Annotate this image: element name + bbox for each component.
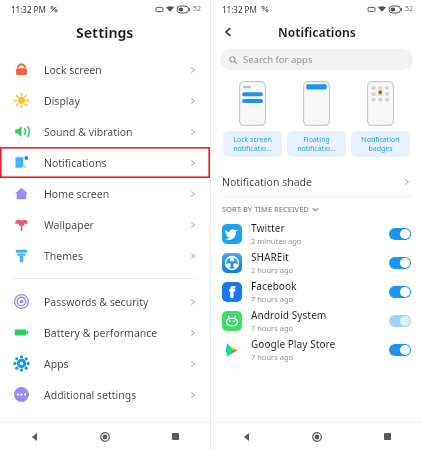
staticText: 7 hours ago [251,352,294,362]
staticText: Battery & performance [44,326,158,340]
staticText: Passwords & security [44,295,149,309]
staticText: Android System [251,308,327,322]
staticText: 2 minutes ago [251,236,302,246]
button[interactable]: SHAREit [211,248,422,277]
staticText: Sound & vibration [44,125,133,139]
staticText: 11:32 PM [222,4,257,15]
staticText: Additional settings [44,388,137,402]
button[interactable]: Notifications [0,147,210,178]
button[interactable]: Display [0,85,210,116]
button[interactable]: Notification badges [351,81,410,157]
staticText: Search for apps [243,53,313,66]
button[interactable]: Additional settings [0,379,210,410]
button[interactable]: Lock screen notificatio... [223,81,282,157]
button[interactable]: Twitter [211,219,422,248]
staticText: 52 [193,4,202,14]
button[interactable]: Toggle Facebook [389,286,411,298]
button[interactable]: Home screen [0,178,210,209]
button[interactable]: Toggle Twitter [389,228,411,240]
button[interactable]: Home [282,423,352,450]
button[interactable]: Search for apps [220,49,413,70]
staticText: Apps [44,357,69,371]
button[interactable]: Back [0,423,70,450]
button[interactable]: Wallpaper [0,209,210,240]
staticText: Themes [44,249,84,263]
staticText: SHAREit [251,250,289,264]
staticText: Lock screen [44,63,102,77]
staticText: 2 hours ago [251,265,294,275]
button[interactable]: Google Play Store [211,335,422,364]
button[interactable]: Recents [140,423,210,450]
staticText: Floating notificatio... [297,135,336,153]
button[interactable]: f [211,277,422,306]
button[interactable]: Back [217,21,239,43]
button[interactable]: Recents [352,423,422,450]
button[interactable]: Home [70,423,140,450]
button[interactable]: Floating notificatio... [287,81,346,157]
staticText: SORT BY TIME RECEIVED [222,204,309,214]
staticText: Home screen [44,187,110,201]
staticText: Settings [76,23,134,42]
staticText: Notification shade [222,175,312,189]
button[interactable]: SORT BY TIME RECEIVED [222,204,422,214]
staticText: f [229,282,236,302]
button[interactable]: Toggle Google Play Store [389,344,411,356]
staticText: Twitter [251,221,285,235]
button[interactable]: Android System [211,306,422,335]
staticText: Google Play Store [251,337,336,351]
staticText: Notifications [278,24,356,40]
button[interactable]: Passwords & security [0,286,210,317]
button[interactable]: Themes [0,240,210,271]
staticText: Facebook [251,279,297,293]
button[interactable]: Toggle SHAREit [389,257,411,269]
staticText: 52 [405,4,414,14]
button[interactable]: Apps [0,348,210,379]
button[interactable]: Sound & vibration [0,116,210,147]
staticText: 7 hours ago [251,294,294,304]
staticText: Notification badges [361,135,400,153]
staticText: Display [44,94,80,108]
staticText: Wallpaper [44,218,94,232]
button[interactable]: Battery & performance [0,317,210,348]
staticText: Notifications [44,156,107,170]
button[interactable]: Back [211,423,282,450]
button[interactable]: Toggle Android System [389,315,411,327]
staticText: 11:32 PM [11,4,46,15]
button[interactable]: Notification shade [211,168,422,196]
staticText: Lock screen notificatio... [233,135,272,153]
button[interactable]: Lock screen [0,54,210,85]
staticText: 7 hours ago [251,323,294,333]
